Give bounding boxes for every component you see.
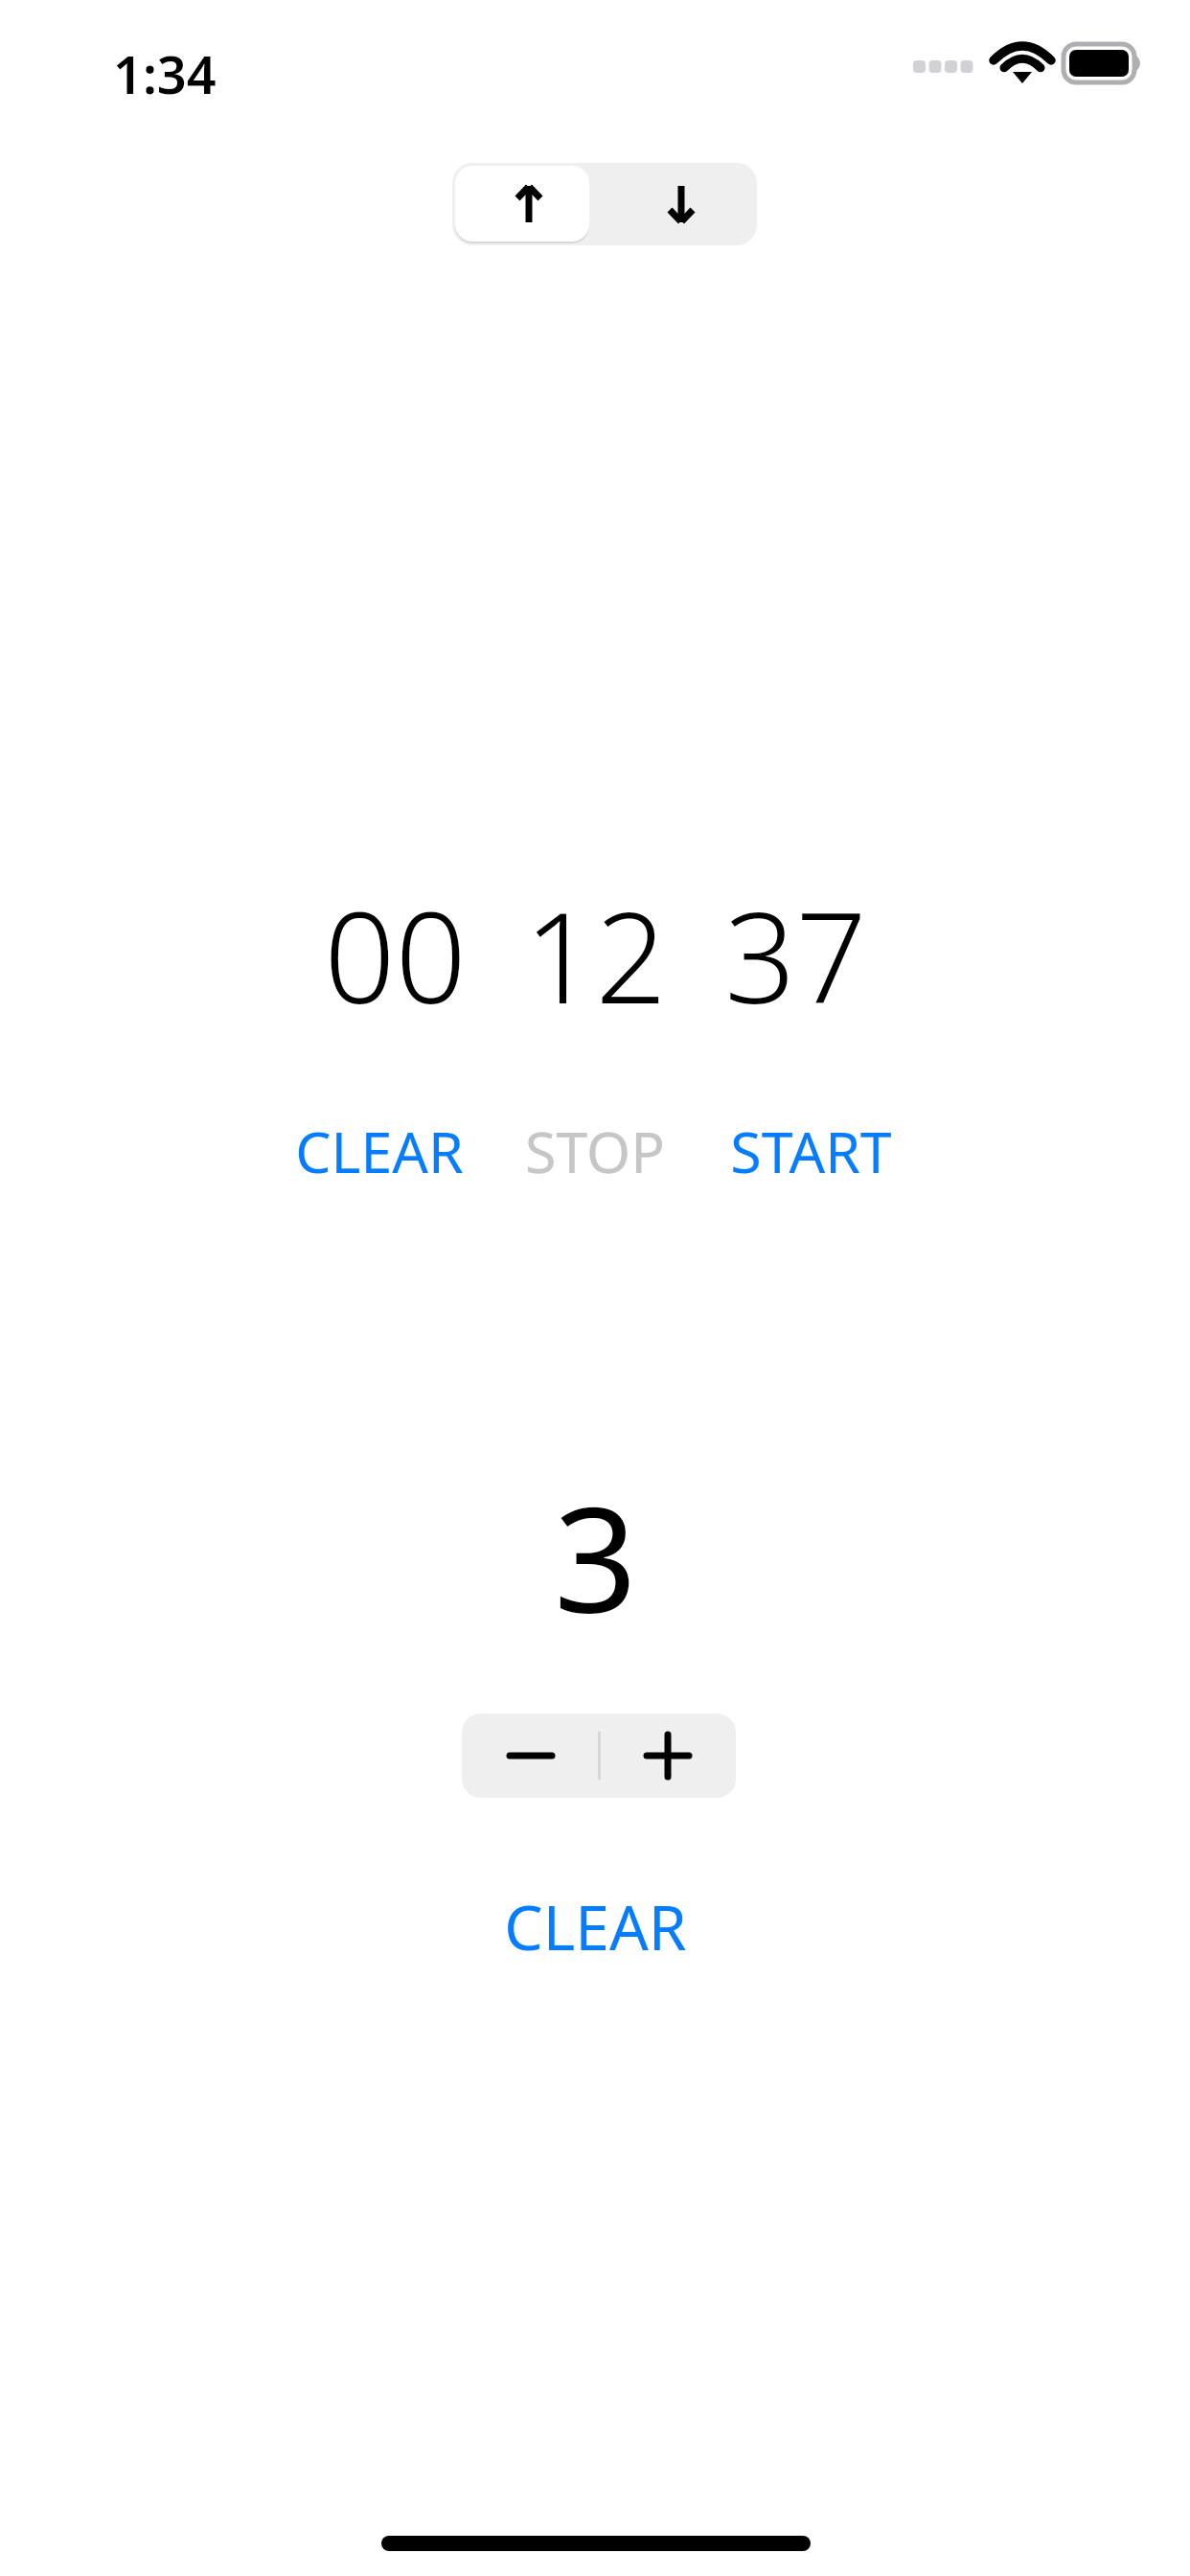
staticText: CLEAR [504,1885,687,1968]
staticText: 37 [724,870,867,1040]
staticText: STOP [525,1113,665,1189]
button[interactable]: CLEAR [276,1110,482,1192]
button[interactable]: CLEAR [480,1880,710,1972]
button[interactable]: Decrease [462,1713,599,1798]
staticText: 00 [324,870,467,1040]
staticText: START [730,1113,892,1189]
button[interactable]: START [708,1110,914,1192]
button[interactable]: Count down [605,163,757,245]
button[interactable]: STOP [509,1110,681,1192]
button[interactable]: Increase [599,1713,736,1798]
button[interactable]: Count up [452,163,605,245]
staticText: 3 [554,1457,637,1655]
staticText: 1:34 [113,38,217,109]
staticText: 12 [524,870,667,1040]
staticText: CLEAR [295,1113,464,1189]
